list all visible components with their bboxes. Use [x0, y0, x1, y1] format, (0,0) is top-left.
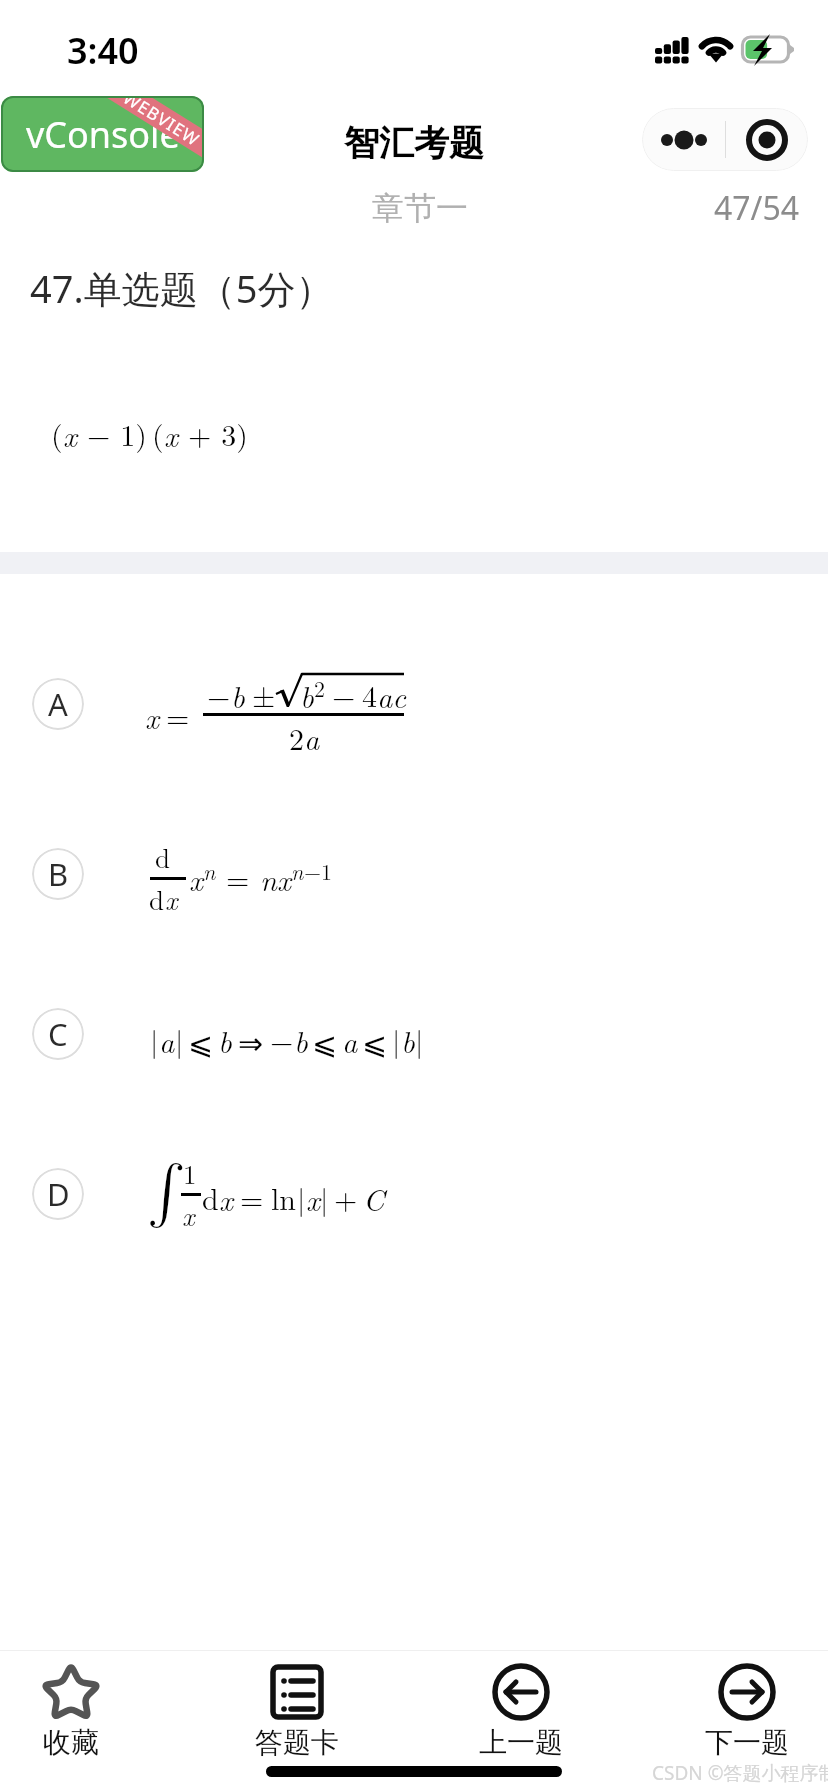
button[interactable]: D	[32, 1168, 84, 1220]
button[interactable]: B	[32, 848, 84, 900]
staticText: b	[231, 674, 245, 716]
staticText: ∫	[147, 1163, 186, 1221]
staticText: −	[332, 673, 356, 716]
staticText: 2	[314, 672, 326, 703]
button[interactable]: Close	[725, 108, 808, 171]
staticText: ln	[271, 1176, 297, 1219]
staticText: 1	[183, 1154, 197, 1192]
staticText: a	[159, 1019, 175, 1061]
staticText: ⩽	[362, 1026, 388, 1061]
staticText: b	[401, 1019, 415, 1061]
staticText: ⩽	[188, 1026, 214, 1061]
staticText: x	[219, 1177, 233, 1219]
staticText: 47/54	[714, 186, 800, 230]
staticText: b	[294, 1019, 308, 1061]
staticText: n	[291, 855, 304, 886]
staticText: (	[152, 412, 164, 455]
staticText: d	[202, 1176, 219, 1219]
staticText: + 3)	[178, 412, 248, 455]
staticText: −	[207, 673, 231, 716]
staticText: |	[320, 1176, 329, 1219]
button[interactable]: Favourite	[0, 1651, 171, 1763]
staticText: 4	[362, 673, 377, 716]
button[interactable]: Next question	[647, 1651, 828, 1763]
staticText: =	[240, 1176, 264, 1219]
staticText: C	[48, 1013, 68, 1055]
staticText: b	[218, 1019, 232, 1061]
staticText: 章节一	[372, 188, 468, 228]
staticText: ±	[252, 673, 276, 716]
staticText: =	[226, 856, 250, 899]
staticText: |	[150, 1018, 159, 1061]
staticText: 2	[289, 716, 304, 759]
staticText: x	[145, 695, 159, 737]
staticText: n	[260, 857, 277, 899]
staticText: 47.单选题（5分）	[30, 262, 334, 314]
staticText: ac	[377, 674, 407, 716]
staticText: CSDN ©答题小程序制作	[652, 1760, 828, 1786]
staticText: d	[155, 838, 171, 876]
button[interactable]: Previous question	[421, 1651, 621, 1763]
staticText: 智汇考题	[344, 121, 484, 165]
button[interactable]: vConsole	[1, 96, 204, 172]
staticText: (	[51, 412, 63, 455]
staticText: ⇒	[238, 1026, 264, 1061]
staticText: |	[297, 1176, 306, 1219]
staticText: x	[182, 1196, 195, 1234]
staticText: C	[363, 1177, 385, 1219]
button[interactable]: Answer sheet	[197, 1651, 397, 1763]
button[interactable]: A	[32, 678, 84, 730]
staticText: +	[334, 1176, 358, 1219]
staticText: 收藏	[43, 1725, 99, 1760]
staticText: A	[48, 683, 68, 725]
staticText: −	[270, 1018, 294, 1061]
staticText: x	[277, 857, 291, 899]
staticText: vConsole	[26, 110, 180, 159]
staticText: x	[63, 413, 77, 455]
staticText: 答题卡	[255, 1725, 339, 1760]
staticText: B	[48, 853, 69, 895]
staticText: n	[203, 855, 216, 886]
staticText: 下一题	[705, 1725, 789, 1760]
staticText: x	[165, 880, 178, 918]
staticText: |	[415, 1018, 424, 1061]
staticText: a	[304, 716, 320, 758]
staticText: d	[149, 880, 165, 918]
staticText: b	[300, 674, 314, 716]
staticText: |	[392, 1018, 401, 1061]
staticText: x	[306, 1177, 320, 1219]
button[interactable]: More	[642, 108, 725, 171]
staticText: 3:40	[67, 26, 139, 75]
staticText: − 1)	[77, 412, 147, 455]
staticText: D	[47, 1173, 70, 1215]
staticText: x	[189, 857, 203, 899]
staticText: a	[342, 1019, 358, 1061]
staticText: −1	[304, 855, 333, 886]
staticText: ⩽	[312, 1026, 338, 1061]
staticText: WEBVIEW	[119, 96, 204, 151]
staticText: x	[164, 413, 178, 455]
staticText: 上一题	[479, 1725, 563, 1760]
staticText: |	[175, 1018, 184, 1061]
button[interactable]: C	[32, 1008, 84, 1060]
staticText: =	[166, 694, 190, 737]
